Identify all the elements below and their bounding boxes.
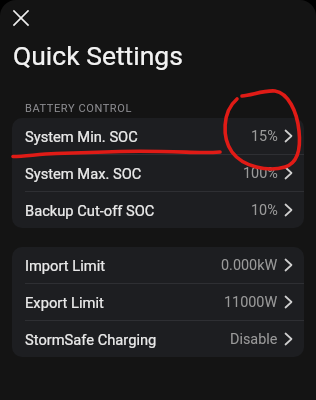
staticText: System Max. SOC bbox=[25, 165, 142, 182]
staticText: Disable bbox=[230, 331, 278, 348]
button[interactable]: Export Limit bbox=[12, 284, 304, 320]
staticText: 15% bbox=[251, 128, 278, 145]
staticText: Backup Cut-off SOC bbox=[25, 202, 155, 219]
staticText: 100% bbox=[243, 165, 278, 182]
button[interactable]: StormSafe Charging bbox=[12, 321, 304, 357]
staticText: 0.000kW bbox=[221, 257, 278, 274]
staticText: System Min. SOC bbox=[25, 128, 138, 145]
staticText: BATTERY CONTROL bbox=[25, 102, 132, 115]
staticText: StormSafe Charging bbox=[25, 331, 157, 348]
button[interactable]: System Min. SOC bbox=[12, 118, 304, 154]
staticText: Import Limit bbox=[25, 257, 106, 274]
button[interactable]: Close bbox=[8, 5, 34, 31]
button[interactable]: System Max. SOC bbox=[12, 155, 304, 191]
button[interactable]: Import Limit bbox=[12, 247, 304, 283]
staticText: Export Limit bbox=[25, 294, 104, 311]
staticText: 11000W bbox=[224, 294, 278, 311]
staticText: 10% bbox=[251, 202, 278, 219]
staticText: Quick Settings bbox=[13, 40, 183, 71]
button[interactable]: Backup Cut-off SOC bbox=[12, 192, 304, 228]
